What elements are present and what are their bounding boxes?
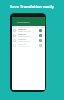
button[interactable] bbox=[12, 43, 45, 48]
staticText: Translations bbox=[17, 21, 30, 24]
button[interactable] bbox=[12, 38, 45, 43]
button[interactable] bbox=[12, 33, 45, 38]
button[interactable] bbox=[12, 28, 45, 33]
staticText: Save Translation easily bbox=[0, 4, 64, 9]
